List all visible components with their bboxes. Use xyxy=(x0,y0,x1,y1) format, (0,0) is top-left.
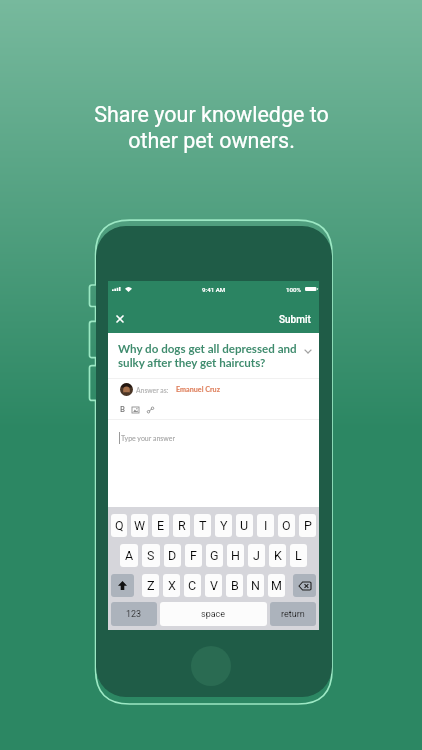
staticText: D xyxy=(168,548,177,563)
staticText: B xyxy=(120,405,125,414)
button[interactable]: F xyxy=(185,544,202,567)
button[interactable]: Z xyxy=(142,574,159,597)
staticText: Type your answer xyxy=(121,434,176,442)
staticText: E xyxy=(157,518,165,533)
button[interactable]: Insert link xyxy=(145,404,156,415)
staticText: T xyxy=(199,518,207,533)
button[interactable]: E xyxy=(152,514,169,537)
button[interactable]: L xyxy=(290,544,307,567)
staticText: Why do dogs get all depressed and sulky … xyxy=(118,342,298,369)
button[interactable]: A xyxy=(120,544,138,567)
staticText: O xyxy=(282,518,291,533)
button[interactable]: D xyxy=(164,544,181,567)
button[interactable]: Numbers xyxy=(111,602,157,626)
button[interactable]: Q xyxy=(111,514,127,537)
button[interactable]: Bold xyxy=(117,404,128,415)
staticText: 123 xyxy=(126,609,142,620)
button[interactable]: J xyxy=(248,544,265,567)
staticText: B xyxy=(231,578,239,593)
staticText: G xyxy=(210,548,219,563)
staticText: A xyxy=(125,548,134,563)
button[interactable]: N xyxy=(247,574,264,597)
button[interactable]: V xyxy=(205,574,222,597)
button[interactable]: Backspace xyxy=(293,574,316,597)
staticText: Y xyxy=(220,518,228,533)
staticText: Share your knowledge to other pet owners… xyxy=(94,102,329,153)
staticText: F xyxy=(190,548,197,563)
staticText: space xyxy=(201,609,226,620)
button[interactable]: Insert image xyxy=(130,404,141,415)
staticText: S xyxy=(147,548,155,563)
button[interactable]: W xyxy=(131,514,148,537)
staticText: I xyxy=(264,518,268,533)
staticText: 100% xyxy=(286,286,302,293)
staticText: H xyxy=(231,548,240,563)
staticText: R xyxy=(178,518,186,533)
staticText: W xyxy=(134,518,146,533)
staticText: K xyxy=(274,548,282,563)
button[interactable]: Return xyxy=(270,602,316,626)
staticText: return xyxy=(281,609,305,620)
button[interactable]: K xyxy=(269,544,286,567)
staticText: C xyxy=(188,578,197,593)
staticText: Answer as: xyxy=(136,386,169,394)
button[interactable]: Y xyxy=(215,514,232,537)
staticText: J xyxy=(253,548,260,563)
staticText: 9:41 AM xyxy=(202,286,226,293)
staticText: Q xyxy=(115,518,124,533)
button[interactable]: O xyxy=(278,514,295,537)
button[interactable]: Emanuel Cruz xyxy=(176,385,220,394)
button[interactable]: P xyxy=(299,514,316,537)
button[interactable]: space xyxy=(160,602,267,626)
button[interactable]: M xyxy=(268,574,285,597)
staticText: P xyxy=(304,518,312,533)
button[interactable]: C xyxy=(184,574,201,597)
staticText: Submit xyxy=(279,314,311,326)
staticText: U xyxy=(240,518,249,533)
staticText: N xyxy=(251,578,260,593)
staticText: V xyxy=(210,578,218,593)
button[interactable]: Shift xyxy=(111,574,134,597)
staticText: Z xyxy=(147,578,155,593)
button[interactable]: Close xyxy=(110,309,130,329)
button[interactable]: X xyxy=(163,574,180,597)
button[interactable]: Expand xyxy=(300,343,316,359)
button[interactable]: I xyxy=(257,514,274,537)
button[interactable]: G xyxy=(206,544,223,567)
button[interactable]: B xyxy=(226,574,243,597)
button[interactable]: H xyxy=(227,544,244,567)
staticText: M xyxy=(271,578,282,593)
button[interactable]: Submit xyxy=(274,310,316,330)
button[interactable]: R xyxy=(173,514,190,537)
staticText: X xyxy=(168,578,176,593)
button[interactable]: S xyxy=(142,544,160,567)
staticText: L xyxy=(295,548,302,563)
button[interactable]: T xyxy=(194,514,211,537)
button[interactable]: U xyxy=(236,514,253,537)
